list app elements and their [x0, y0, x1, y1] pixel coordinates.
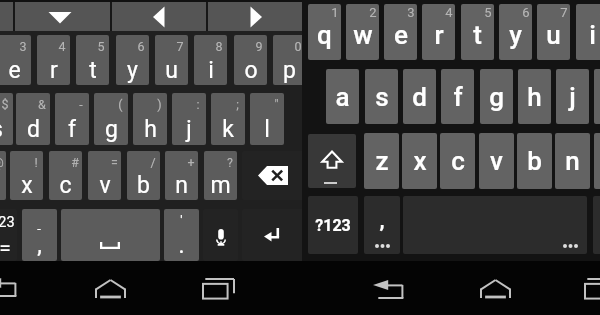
staticText: n: [565, 146, 580, 176]
button[interactable]: z: [364, 133, 399, 189]
button[interactable]: g: [480, 69, 513, 124]
button[interactable]: +: [165, 151, 198, 200]
button[interactable]: d: [403, 69, 436, 124]
staticText: p: [283, 57, 296, 84]
staticText: ): [157, 97, 162, 112]
staticText: x: [413, 146, 427, 176]
button[interactable]: 3: [384, 4, 417, 60]
button[interactable]: 2: [346, 4, 379, 60]
button[interactable]: ,: [364, 196, 400, 254]
button[interactable]: :: [172, 93, 206, 145]
button[interactable]: 7: [537, 4, 570, 60]
staticText: 0: [294, 39, 302, 54]
button[interactable]: 6: [499, 4, 532, 60]
button[interactable]: Recents: [202, 278, 235, 299]
staticText: ;: [236, 97, 239, 112]
button[interactable]: /: [127, 151, 160, 200]
button[interactable]: b: [517, 133, 552, 189]
staticText: v: [490, 146, 503, 176]
button[interactable]: m: [594, 133, 600, 189]
button[interactable]: 9: [234, 35, 267, 85]
button[interactable]: $: [0, 93, 13, 145]
staticText: x: [21, 172, 33, 199]
staticText: t: [473, 20, 482, 50]
button[interactable]: Home: [480, 279, 511, 299]
button[interactable]: 5: [76, 35, 109, 85]
staticText: ?123: [315, 216, 351, 235]
staticText: h: [144, 116, 157, 143]
staticText: z: [375, 146, 389, 176]
button[interactable]: 4: [37, 35, 70, 85]
button[interactable]: ?: [204, 151, 237, 200]
button[interactable]: Voice input: [203, 209, 238, 261]
button[interactable]: Previous: [144, 4, 174, 30]
button[interactable]: Home: [95, 279, 126, 299]
button[interactable]: 3: [0, 35, 31, 85]
button[interactable]: Enter: [242, 209, 304, 261]
button[interactable]: !: [10, 151, 43, 200]
staticText: $: [1, 97, 9, 112]
staticText: 2: [369, 5, 377, 20]
staticText: =: [0, 236, 11, 254]
button[interactable]: ": [250, 93, 284, 145]
button[interactable]: h: [518, 69, 551, 124]
button[interactable]: a: [326, 69, 359, 124]
button[interactable]: (: [94, 93, 128, 145]
staticText: :: [196, 97, 200, 112]
staticText: y: [127, 57, 138, 84]
staticText: 9: [255, 39, 263, 54]
button[interactable]: Backspace: [242, 151, 304, 200]
staticText: e: [8, 57, 21, 84]
button[interactable]: 0: [273, 35, 306, 85]
staticText: ": [274, 97, 279, 112]
button[interactable]: 4: [422, 4, 455, 60]
staticText: 3: [407, 5, 415, 20]
staticText: ,: [37, 232, 42, 259]
button[interactable]: ': [164, 209, 199, 261]
staticText: 6: [137, 39, 145, 54]
button[interactable]: j: [556, 69, 589, 124]
staticText: f: [68, 116, 76, 143]
staticText: m: [210, 172, 231, 199]
staticText: s: [0, 116, 3, 143]
button[interactable]: ?123: [0, 209, 17, 261]
button[interactable]: Space: [403, 196, 587, 254]
button[interactable]: Recents: [584, 278, 600, 299]
staticText: -: [37, 221, 41, 236]
button[interactable]: -: [22, 209, 57, 261]
button[interactable]: x: [402, 133, 437, 189]
staticText: ?123: [0, 214, 15, 231]
button[interactable]: k: [594, 69, 600, 124]
staticText: k: [222, 116, 234, 143]
button[interactable]: n: [555, 133, 590, 189]
button[interactable]: 7: [155, 35, 188, 85]
button[interactable]: 6: [116, 35, 149, 85]
button[interactable]: Hide keyboard: [45, 4, 75, 30]
button[interactable]: 1: [308, 4, 341, 60]
button[interactable]: ;: [211, 93, 245, 145]
button[interactable]: Space: [61, 209, 160, 261]
button[interactable]: -: [55, 93, 89, 145]
staticText: .: [178, 232, 185, 259]
button[interactable]: =: [88, 151, 121, 200]
button[interactable]: 5: [461, 4, 494, 60]
button[interactable]: 8: [576, 4, 600, 60]
button[interactable]: s: [365, 69, 398, 124]
staticText: v: [99, 172, 111, 199]
button[interactable]: c: [440, 133, 475, 189]
button[interactable]: ): [133, 93, 167, 145]
button[interactable]: Back: [373, 280, 405, 300]
button[interactable]: v: [479, 133, 514, 189]
button[interactable]: &: [16, 93, 50, 145]
button[interactable]: f: [441, 69, 474, 124]
button[interactable]: Back: [0, 278, 18, 298]
button[interactable]: ?123: [308, 196, 358, 254]
staticText: +: [187, 155, 195, 170]
staticText: 4: [58, 39, 66, 54]
button[interactable]: Next: [241, 4, 271, 30]
button[interactable]: @: [0, 151, 6, 200]
button[interactable]: 8: [194, 35, 227, 85]
button[interactable]: Shift: [308, 134, 356, 188]
button[interactable]: #: [49, 151, 82, 200]
